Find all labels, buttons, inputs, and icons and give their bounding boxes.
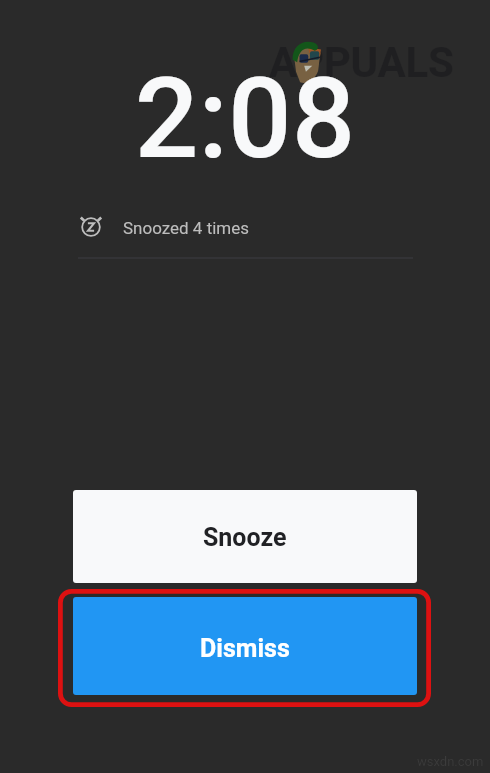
button[interactable]: Dismiss	[73, 597, 417, 695]
staticText: APPUALS	[269, 38, 454, 87]
staticText: Snoozed 4 times	[123, 218, 250, 238]
staticText: Dismiss	[200, 634, 290, 663]
staticText: wsxdn.com	[417, 754, 484, 769]
staticText: Snooze	[203, 523, 287, 552]
staticText: 2:08	[0, 53, 490, 184]
other: Snooze alarm	[76, 208, 106, 238]
button[interactable]: Snooze	[73, 490, 417, 583]
